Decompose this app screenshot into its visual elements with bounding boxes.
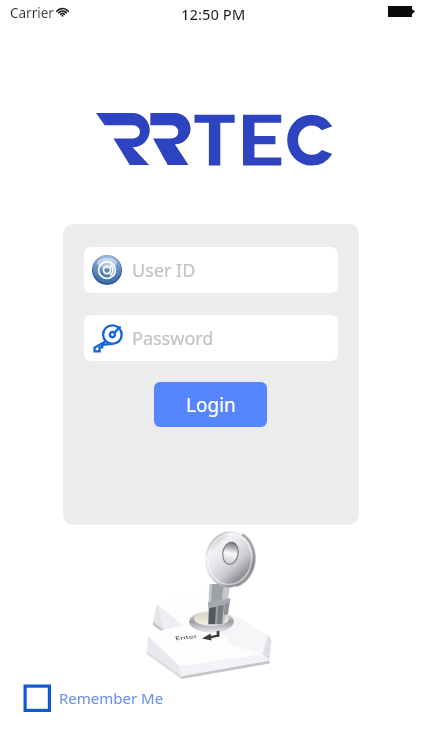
button[interactable]: Password — [84, 315, 338, 361]
other: Wifi — [56, 6, 69, 17]
staticText: Login — [186, 392, 236, 418]
staticText: 12:50 PM — [181, 4, 246, 24]
staticText: User ID — [132, 258, 196, 283]
button[interactable]: User ID — [84, 247, 338, 293]
staticText: Password — [132, 326, 214, 351]
button[interactable]: Login — [154, 382, 267, 427]
staticText: Enter — [174, 632, 199, 641]
other: Battery — [388, 6, 415, 17]
other: Remember me checkbox — [22, 682, 54, 714]
button[interactable]: Remember me checkbox — [22, 682, 164, 714]
staticText: Remember Me — [59, 688, 164, 708]
staticText: Carrier — [10, 4, 54, 22]
